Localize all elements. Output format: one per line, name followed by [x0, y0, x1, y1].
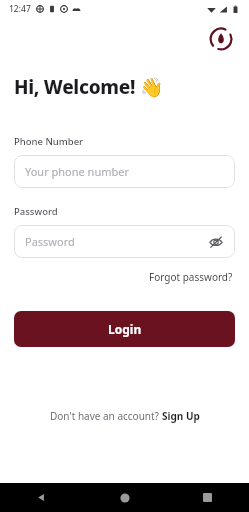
button[interactable]: Password — [14, 225, 235, 258]
staticText: Sign Up — [162, 409, 200, 423]
button[interactable]: Your phone number — [14, 155, 235, 188]
staticText: Phone Number — [14, 135, 84, 148]
button[interactable]: Back — [0, 483, 83, 512]
button[interactable]: Recent apps — [166, 483, 249, 512]
button[interactable]: Sign Up — [162, 409, 200, 423]
staticText: Your phone number — [25, 164, 224, 179]
button[interactable]: Show password — [208, 234, 224, 250]
staticText: Hi, Welcome! 👋 — [14, 74, 164, 100]
button[interactable]: Login — [14, 311, 235, 347]
button[interactable]: Home — [83, 483, 166, 512]
button[interactable]: App logo — [208, 26, 234, 52]
staticText: Password — [25, 234, 208, 249]
staticText: Forgot password? — [149, 270, 233, 284]
staticText: 12:47 — [9, 3, 31, 15]
staticText: Login — [108, 321, 142, 337]
staticText: Don't have an account? — [50, 409, 162, 423]
button[interactable]: Forgot password? — [147, 268, 235, 286]
staticText: Password — [14, 205, 58, 218]
